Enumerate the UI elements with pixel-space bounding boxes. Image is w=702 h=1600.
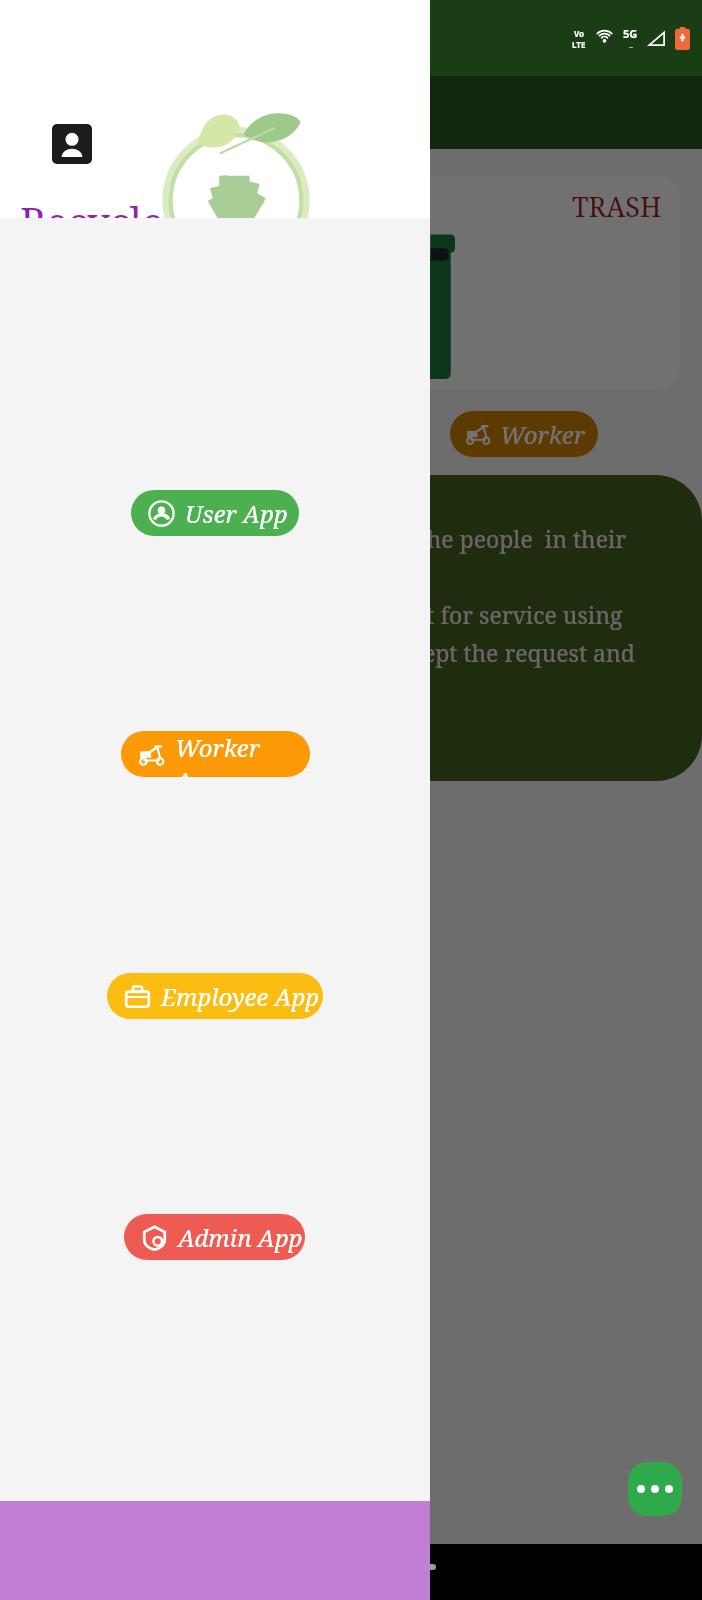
staticText: Employee App (161, 980, 320, 1013)
staticText: Worker App (175, 731, 310, 777)
button[interactable]: Admin App (124, 1214, 305, 1260)
staticText: User App (185, 497, 288, 530)
button[interactable]: Employee App (107, 973, 323, 1019)
button[interactable]: More options (628, 1462, 682, 1516)
staticText: Admin App (178, 1221, 303, 1254)
staticText: 5G (623, 26, 638, 41)
button[interactable]: Worker App (121, 731, 310, 777)
staticText: Recycle (20, 194, 164, 248)
staticText: This application is for the worker to th… (20, 523, 682, 707)
staticText: .. (629, 41, 633, 51)
button[interactable]: Worker (450, 411, 598, 457)
staticText: Worker (500, 418, 585, 451)
staticText: TRASH (572, 188, 662, 225)
staticText: LTE (572, 39, 586, 50)
button[interactable]: Profile (52, 124, 92, 164)
staticText: Vo (574, 28, 585, 39)
button[interactable]: User App (131, 490, 299, 536)
